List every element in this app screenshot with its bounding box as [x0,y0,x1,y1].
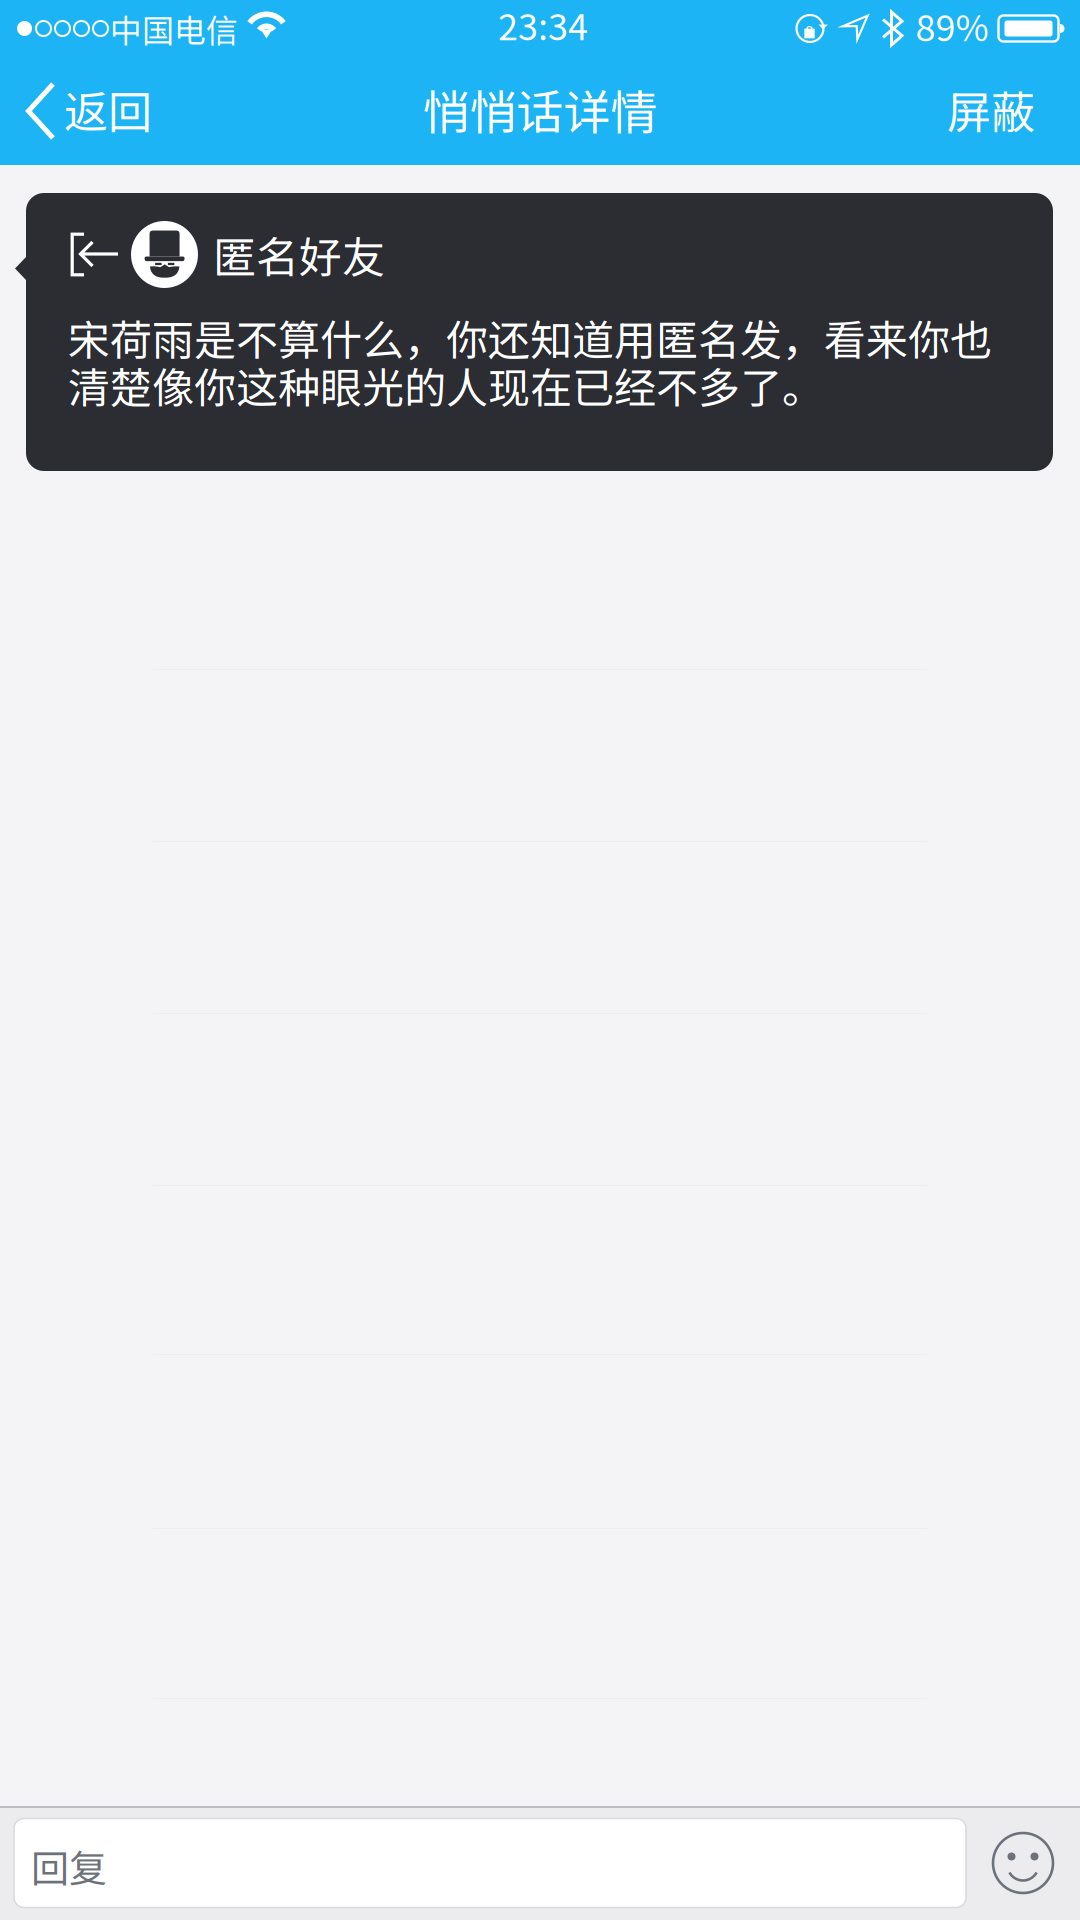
staticText: 89% [915,0,988,51]
button[interactable]: 回复 [14,1818,966,1907]
staticText: 匿名好友 [213,223,385,286]
staticText: 中国电信 [110,5,238,52]
staticText: 屏蔽 [947,77,1035,141]
staticText: 悄悄话详情 [422,75,657,143]
staticText: 回复 [31,1838,107,1893]
staticText: 返回 [64,77,152,141]
button[interactable]: 屏蔽 [917,57,1080,165]
button[interactable]: Emoji keyboard [966,1813,1080,1913]
staticText: 23:34 [498,0,588,50]
staticText: 宋荷雨是不算什么，你还知道用匿名发，看来你也清楚像你这种眼光的人现在已经不多了。 [68,307,992,416]
button[interactable]: 返回 [0,57,172,165]
